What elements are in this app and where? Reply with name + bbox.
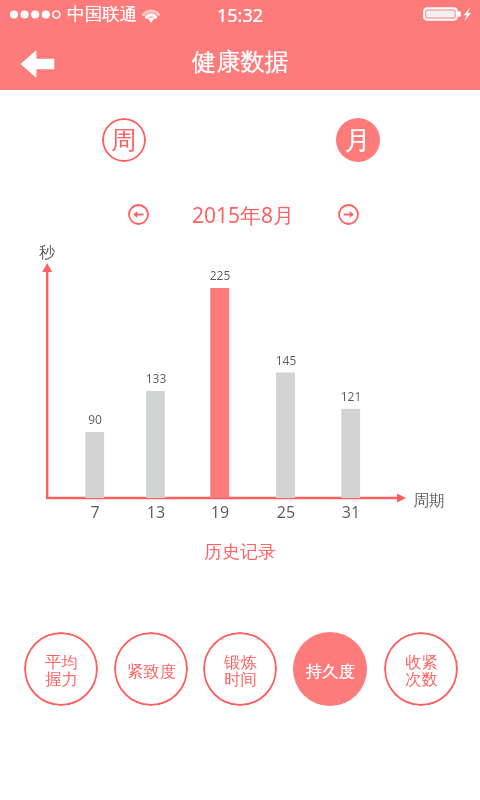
staticText: 历史记录 bbox=[140, 541, 340, 564]
staticText: 13 bbox=[131, 501, 181, 523]
button[interactable]: 月 bbox=[336, 118, 380, 162]
staticText: 锻炼 时间 bbox=[224, 652, 257, 690]
staticText: 145 bbox=[261, 352, 311, 368]
staticText: 31 bbox=[326, 501, 376, 523]
staticText: 健康数据 bbox=[192, 47, 289, 77]
staticText: 90 bbox=[70, 411, 120, 427]
staticText: 周期 bbox=[413, 491, 445, 511]
staticText: 秒 bbox=[39, 243, 55, 263]
staticText: 收紧 次数 bbox=[405, 652, 438, 690]
staticText: 225 bbox=[195, 267, 245, 283]
button[interactable]: 平均 握力 bbox=[24, 632, 98, 706]
staticText: 133 bbox=[131, 370, 181, 386]
button[interactable]: 收紧 次数 bbox=[384, 632, 458, 706]
button[interactable]: 周 bbox=[102, 118, 146, 162]
staticText: 25 bbox=[261, 501, 311, 523]
staticText: 紧致度 bbox=[127, 661, 176, 682]
staticText: 月 bbox=[345, 124, 371, 156]
staticText: 周 bbox=[111, 124, 137, 156]
button[interactable]: Next month bbox=[338, 204, 359, 225]
staticText: 2015年8月 bbox=[143, 201, 343, 230]
staticText: 持久度 bbox=[306, 661, 355, 682]
button[interactable]: 持久度 bbox=[293, 632, 367, 706]
staticText: 平均 握力 bbox=[45, 652, 78, 690]
button[interactable]: Back bbox=[14, 44, 62, 84]
staticText: 19 bbox=[195, 501, 245, 523]
staticText: 15:32 bbox=[217, 3, 264, 28]
staticText: 121 bbox=[326, 388, 376, 404]
staticText: 7 bbox=[70, 501, 120, 523]
button[interactable]: 锻炼 时间 bbox=[203, 632, 277, 706]
staticText: 中国联通 bbox=[67, 3, 137, 25]
button[interactable]: 紧致度 bbox=[114, 632, 188, 706]
button[interactable]: Previous month bbox=[128, 204, 149, 225]
